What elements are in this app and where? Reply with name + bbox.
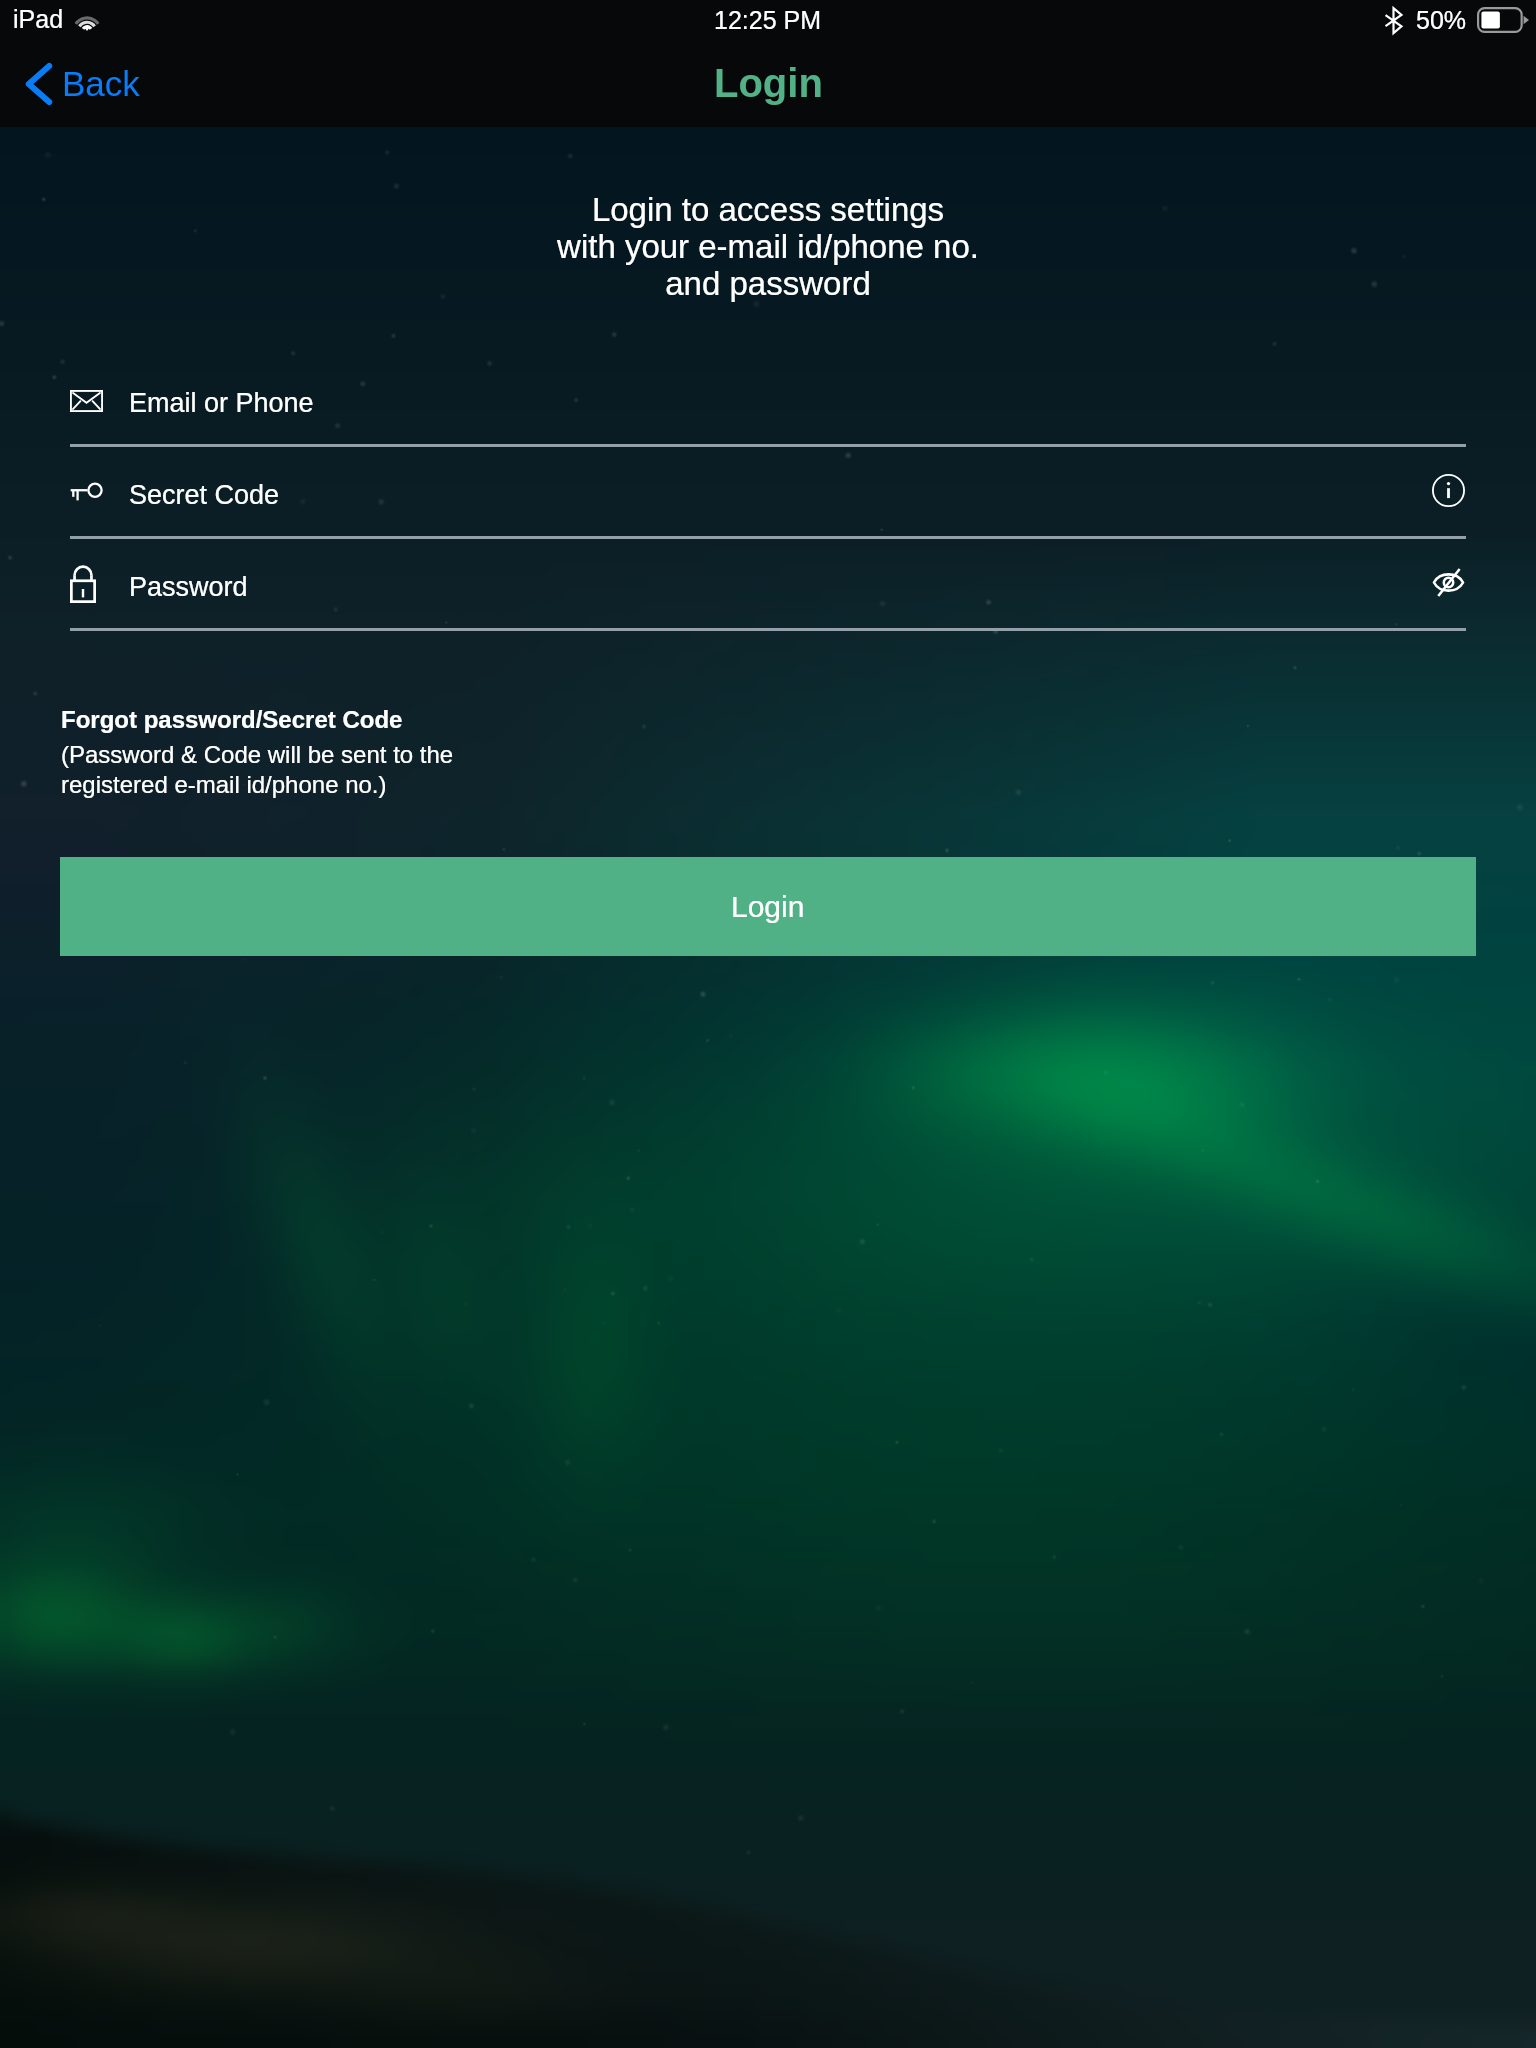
button[interactable]: Password xyxy=(70,539,1466,631)
button[interactable]: Secret Code xyxy=(70,447,1466,539)
button[interactable]: Forgot password/Secret Code xyxy=(61,706,403,733)
staticText: 12:25 PM xyxy=(714,6,822,34)
staticText: Login xyxy=(714,61,823,106)
staticText: Back xyxy=(62,64,140,103)
staticText: Login xyxy=(731,890,805,924)
button[interactable]: Show password xyxy=(1426,553,1470,597)
staticText: 50% xyxy=(1416,6,1467,34)
staticText: iPad xyxy=(13,5,64,33)
button[interactable]: Info xyxy=(1426,461,1470,505)
staticText: Email or Phone xyxy=(129,388,314,418)
staticText: Login to access settings with your e-mai… xyxy=(0,191,1536,302)
button[interactable]: Back xyxy=(16,55,156,115)
staticText: Password xyxy=(129,572,248,602)
staticText: Secret Code xyxy=(129,480,280,510)
button[interactable]: Email or Phone xyxy=(70,355,1466,447)
button[interactable]: Login xyxy=(60,857,1476,956)
staticText: (Password & Code will be sent to the reg… xyxy=(61,741,454,798)
